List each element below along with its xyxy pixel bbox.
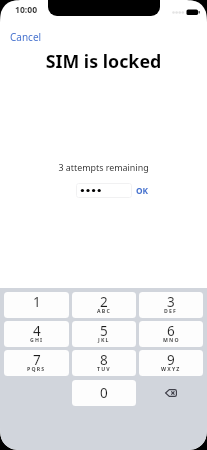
staticText: OK — [136, 185, 149, 196]
staticText: 9 — [167, 351, 175, 369]
button[interactable]: Backspace — [139, 380, 203, 406]
button[interactable]: Cancel — [10, 30, 42, 44]
button[interactable]: 4 — [4, 321, 69, 347]
button[interactable]: 3 — [139, 292, 203, 318]
staticText: 3 — [167, 293, 175, 311]
staticText: 5 — [100, 322, 108, 340]
button[interactable]: 1 — [4, 292, 69, 318]
staticText: 3 attempts remaining — [0, 161, 207, 173]
button[interactable]: 8 — [72, 350, 136, 376]
staticText: PQRS — [27, 365, 46, 372]
button[interactable]: 5 — [72, 321, 136, 347]
staticText: 2 — [100, 293, 108, 311]
staticText: MNO — [163, 336, 180, 343]
staticText: 7 — [33, 351, 41, 369]
staticText: ABC — [97, 307, 111, 314]
staticText: 0 — [100, 384, 108, 402]
staticText: Cancel — [10, 30, 42, 44]
staticText: DEF — [164, 307, 178, 314]
staticText: JKL — [98, 336, 110, 343]
button[interactable] — [76, 183, 132, 198]
staticText: TUV — [97, 365, 111, 372]
staticText: 6 — [167, 322, 175, 340]
staticText: WXYZ — [161, 365, 181, 372]
button[interactable]: 6 — [139, 321, 203, 347]
staticText: GHI — [30, 336, 44, 343]
button[interactable]: 9 — [139, 350, 203, 376]
staticText: 1 — [33, 293, 41, 311]
staticText: 10:00 — [15, 4, 38, 16]
staticText: 4 — [33, 322, 41, 340]
button[interactable]: 2 — [72, 292, 136, 318]
staticText: 8 — [100, 351, 108, 369]
button[interactable]: OK — [136, 185, 149, 196]
button[interactable]: 7 — [4, 350, 69, 376]
button[interactable]: 0 — [72, 380, 136, 406]
staticText: SIM is locked — [0, 49, 207, 73]
